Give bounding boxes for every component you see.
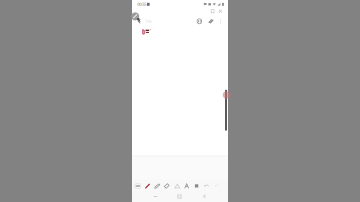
button[interactable]: Pen <box>143 179 152 192</box>
button[interactable]: Back <box>197 191 211 202</box>
button[interactable]: Pin note <box>206 16 216 26</box>
button[interactable]: Reading mode <box>195 17 204 26</box>
button[interactable]: Restore window <box>209 8 216 15</box>
button[interactable]: Selection <box>182 179 191 192</box>
button[interactable]: Recent apps <box>148 191 162 202</box>
button[interactable]: More options <box>217 17 224 26</box>
button[interactable]: Back <box>135 16 143 27</box>
button[interactable]: Pen settings <box>133 179 143 192</box>
button[interactable]: Undo <box>202 179 211 192</box>
button[interactable]: Text <box>192 179 202 192</box>
staticText: Title <box>145 19 152 24</box>
staticText: 00:55 <box>137 2 146 7</box>
button[interactable]: Eraser <box>162 179 171 192</box>
button[interactable]: Highlighter <box>152 179 162 192</box>
button[interactable]: Shapes <box>172 179 182 192</box>
button[interactable]: Close <box>217 8 224 14</box>
button[interactable]: Home <box>172 191 186 202</box>
